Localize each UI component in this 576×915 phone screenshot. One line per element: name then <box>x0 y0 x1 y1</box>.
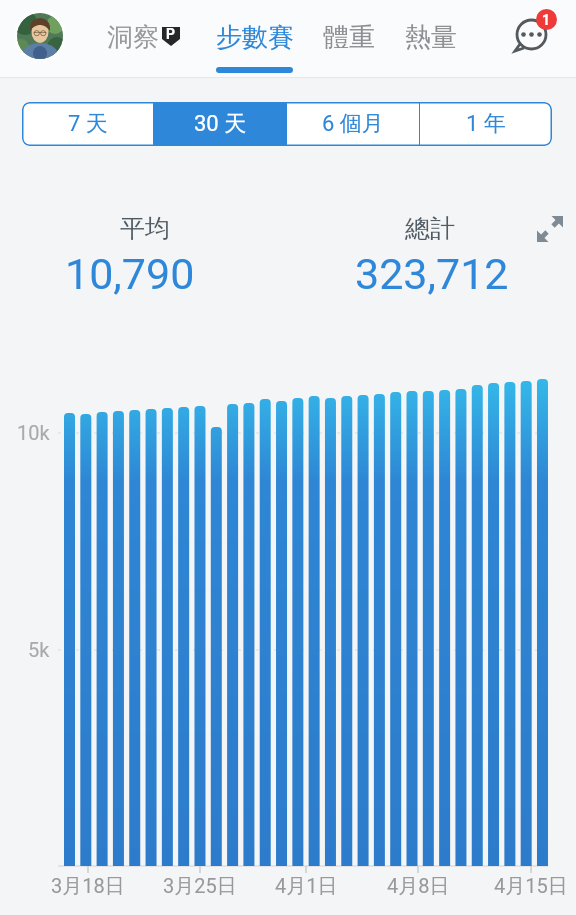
button[interactable]: 熱量 <box>371 21 491 54</box>
staticText: 平均 <box>120 213 170 244</box>
button[interactable]: 1 年 <box>420 102 552 146</box>
button[interactable] <box>531 210 569 248</box>
staticText: 4月1日 <box>275 874 338 899</box>
staticText: 4月15日 <box>494 874 568 899</box>
button[interactable]: 6 個月 <box>287 102 419 146</box>
staticText: 3月25日 <box>163 874 237 899</box>
staticText: 1 年 <box>466 110 506 138</box>
staticText: 5k <box>28 638 50 661</box>
staticText: 4月8日 <box>387 874 450 899</box>
staticText: 3月18日 <box>51 874 125 899</box>
button[interactable]: 7 天 <box>22 102 153 146</box>
button[interactable]: 1 <box>506 10 556 60</box>
button[interactable]: 步數賽 <box>190 21 320 54</box>
staticText: 7 天 <box>68 110 108 138</box>
staticText: 洞察 <box>107 21 159 54</box>
staticText: 323,712 <box>355 249 509 299</box>
staticText: 6 個月 <box>322 110 384 138</box>
staticText: 步數賽 <box>216 21 294 54</box>
button[interactable]: 30 天 <box>154 102 286 146</box>
button[interactable]: 洞察 <box>68 21 198 54</box>
staticText: 熱量 <box>405 21 457 54</box>
staticText: 總計 <box>405 213 455 244</box>
staticText: 體重 <box>323 21 375 54</box>
staticText: 30 天 <box>194 110 247 138</box>
staticText: P <box>166 26 176 42</box>
staticText: 10,790 <box>65 249 195 299</box>
button[interactable]: 體重 <box>289 21 409 54</box>
staticText: 10k <box>17 421 50 444</box>
button[interactable] <box>14 10 66 62</box>
staticText: 1 <box>542 12 551 28</box>
